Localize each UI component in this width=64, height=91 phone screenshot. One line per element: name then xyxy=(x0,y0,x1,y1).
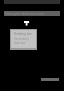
button[interactable]: Making the Android version xyxy=(4,11,60,16)
staticText: Secondary text row xyxy=(14,37,34,45)
staticText: Heading line xyxy=(14,32,32,36)
staticText: Making the Android version xyxy=(5,12,45,16)
button[interactable]: Heading line xyxy=(11,30,36,48)
